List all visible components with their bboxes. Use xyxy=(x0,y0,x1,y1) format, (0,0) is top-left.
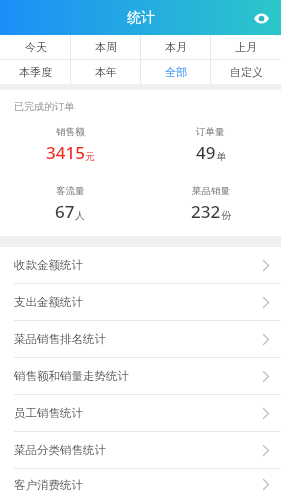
staticText: 客户消费统计 xyxy=(14,478,263,492)
staticText: 232 xyxy=(191,200,221,223)
staticText: 菜品销售排名统计 xyxy=(14,332,263,346)
staticText: 全部 xyxy=(165,65,187,79)
staticText: 上月 xyxy=(235,40,257,54)
staticText: 份 xyxy=(221,209,231,222)
staticText: 订单量 xyxy=(196,126,225,138)
button[interactable]: 菜品销售排名统计 xyxy=(0,321,281,357)
button[interactable]: Toggle amount visibility xyxy=(249,6,273,30)
staticText: 今天 xyxy=(25,40,47,54)
staticText: 67 xyxy=(55,200,75,223)
staticText: 已完成的订单 xyxy=(14,100,74,113)
button[interactable]: 本周 xyxy=(71,35,141,59)
staticText: 元 xyxy=(85,150,95,163)
staticText: 本周 xyxy=(95,40,117,54)
staticText: 收款金额统计 xyxy=(14,258,263,272)
button[interactable]: 销售额和销量走势统计 xyxy=(0,358,281,394)
button[interactable]: 本月 xyxy=(141,35,211,59)
staticText: 3415 xyxy=(46,141,85,164)
staticText: 销售额 xyxy=(56,126,85,138)
staticText: 菜品销量 xyxy=(192,185,230,197)
button[interactable]: 本年 xyxy=(71,60,141,84)
staticText: 本季度 xyxy=(19,65,52,79)
button[interactable]: 员工销售统计 xyxy=(0,395,281,431)
button[interactable]: 今天 xyxy=(0,35,71,59)
staticText: 客流量 xyxy=(56,185,85,197)
button[interactable]: 自定义 xyxy=(211,60,281,84)
staticText: 单 xyxy=(216,150,226,163)
button[interactable]: 菜品分类销售统计 xyxy=(0,432,281,468)
button[interactable]: 收款金额统计 xyxy=(0,247,281,283)
staticText: 本月 xyxy=(165,40,187,54)
staticText: 人 xyxy=(75,209,85,222)
button[interactable]: 本季度 xyxy=(0,60,71,84)
staticText: 自定义 xyxy=(230,65,263,79)
staticText: 菜品分类销售统计 xyxy=(14,443,263,457)
button[interactable]: 全部 xyxy=(141,60,211,84)
button[interactable]: 上月 xyxy=(211,35,281,59)
staticText: 员工销售统计 xyxy=(14,406,263,420)
button[interactable]: 客户消费统计 xyxy=(0,469,281,500)
staticText: 49 xyxy=(196,141,216,164)
staticText: 销售额和销量走势统计 xyxy=(14,369,263,383)
staticText: 本年 xyxy=(95,65,117,79)
button[interactable]: 支出金额统计 xyxy=(0,284,281,320)
staticText: 统计 xyxy=(127,9,155,27)
staticText: 支出金额统计 xyxy=(14,295,263,309)
